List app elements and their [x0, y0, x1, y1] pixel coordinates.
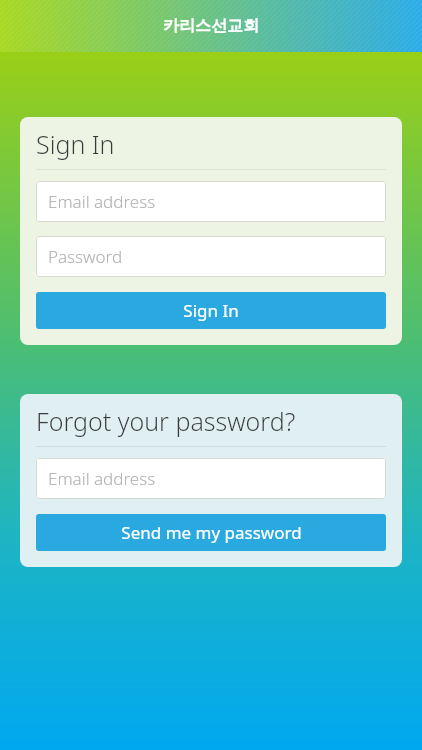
button[interactable]: Password	[36, 236, 386, 277]
button[interactable]: Email address	[36, 458, 386, 499]
button[interactable]: Sign In	[36, 292, 386, 329]
staticText: Forgot your password?	[36, 404, 296, 438]
button[interactable]: Email address	[36, 181, 386, 222]
staticText: 카리스선교회	[163, 16, 259, 36]
staticText: Send me my password	[121, 521, 302, 544]
staticText: Sign In	[36, 127, 115, 161]
staticText: Password	[48, 245, 123, 268]
button[interactable]: Send me my password	[36, 514, 386, 551]
staticText: Sign In	[183, 299, 239, 322]
staticText: Email address	[48, 467, 156, 490]
staticText: Email address	[48, 190, 156, 213]
